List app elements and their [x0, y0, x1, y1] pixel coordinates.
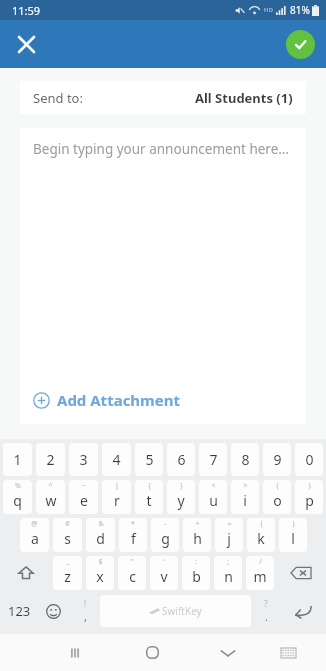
staticText: } [180, 481, 183, 491]
staticText: b [192, 567, 201, 586]
staticText: s [64, 529, 71, 548]
button[interactable]: % [3, 480, 32, 514]
button[interactable]: 4 [102, 443, 131, 476]
staticText: + [195, 519, 200, 529]
button[interactable]: 6 [167, 443, 195, 476]
button[interactable]: 1 [3, 443, 32, 476]
staticText: | [115, 481, 119, 491]
staticText: 7 [209, 450, 218, 469]
staticText: n [224, 567, 233, 586]
button[interactable]: 8 [231, 443, 259, 476]
button[interactable]: Shift [1, 555, 51, 591]
staticText: o [273, 491, 282, 510]
button[interactable]: Space [100, 595, 251, 627]
button[interactable]: 5 [135, 443, 163, 476]
button[interactable]: | [102, 480, 131, 514]
button[interactable]: { [135, 480, 163, 514]
staticText: " [131, 557, 134, 567]
button[interactable]: Add Attachment [20, 384, 306, 424]
button[interactable]: ) [295, 480, 323, 514]
staticText: ? [264, 598, 268, 609]
button[interactable]: 123 [2, 594, 37, 628]
button[interactable]: > [231, 480, 259, 514]
staticText: $ [98, 557, 103, 567]
staticText: j [227, 529, 231, 548]
staticText: ) [308, 481, 311, 491]
staticText: v [160, 567, 168, 586]
button[interactable]: Close [8, 26, 44, 62]
button[interactable]: 3 [69, 443, 98, 476]
staticText: r [114, 491, 120, 510]
staticText: i [243, 491, 247, 510]
button[interactable]: Emoji [37, 594, 70, 628]
button[interactable]: Send announcement [286, 30, 315, 59]
staticText: * [131, 519, 135, 529]
staticText: e [80, 491, 88, 510]
button[interactable]: Hide keyboard [268, 634, 308, 671]
staticText: u [209, 491, 218, 510]
staticText: @ [31, 519, 38, 529]
button[interactable]: ( [263, 480, 291, 514]
button[interactable]: 0 [295, 443, 323, 476]
staticText: 8 [241, 450, 250, 469]
staticText: x [96, 567, 104, 586]
button[interactable]: ; [214, 556, 242, 590]
staticText: y [177, 491, 185, 510]
button[interactable]: ( [247, 518, 275, 552]
staticText: All Students (1) [195, 89, 293, 107]
button[interactable]: : [182, 556, 210, 590]
staticText: m [253, 567, 267, 586]
button[interactable]: Back [208, 634, 248, 671]
staticText: l [291, 529, 295, 548]
button[interactable]: _ [53, 556, 82, 590]
staticText: g [161, 529, 170, 548]
button[interactable]: Begin typing your announcement here… [20, 128, 306, 384]
button[interactable]: < [199, 480, 227, 514]
button[interactable]: $ [86, 556, 114, 590]
button[interactable]: # [53, 518, 82, 552]
button[interactable]: } [167, 480, 195, 514]
staticText: _ [66, 557, 70, 567]
staticText: 9 [273, 450, 282, 469]
button[interactable]: ? [251, 594, 281, 628]
button[interactable]: ~ [69, 480, 98, 514]
button[interactable]: / [246, 556, 274, 590]
button[interactable]: * [119, 518, 147, 552]
button[interactable]: = [215, 518, 243, 552]
staticText: 3 [79, 450, 88, 469]
button[interactable]: ! [70, 594, 100, 628]
staticText: z [64, 567, 71, 586]
button[interactable]: @ [20, 518, 49, 552]
button[interactable]: 2 [36, 443, 65, 476]
staticText: 5 [145, 450, 154, 469]
staticText: 6 [177, 450, 186, 469]
button[interactable]: 7 [199, 443, 227, 476]
staticText: Begin typing your announcement here… [33, 140, 289, 158]
button[interactable]: ) [279, 518, 307, 552]
button[interactable]: & [86, 518, 115, 552]
staticText: p [305, 491, 314, 510]
staticText: ) [292, 519, 295, 529]
staticText: % [15, 481, 21, 491]
staticText: # [65, 519, 70, 529]
staticText: 81% [290, 3, 310, 17]
button[interactable]: Send to: [20, 81, 306, 114]
button[interactable]: + [183, 518, 211, 552]
staticText: & [98, 519, 104, 529]
staticText: ; [227, 557, 229, 567]
staticText: c [129, 567, 136, 586]
staticText: - [164, 519, 167, 529]
button[interactable]: - [151, 518, 179, 552]
button[interactable]: Backspace [276, 555, 325, 591]
button[interactable]: ‘ [150, 556, 178, 590]
staticText: 1 [13, 450, 22, 469]
button[interactable]: Home [132, 634, 172, 671]
button[interactable]: ^ [36, 480, 65, 514]
button[interactable]: " [118, 556, 146, 590]
button[interactable]: Enter [281, 594, 324, 628]
staticText: ! [84, 598, 87, 609]
button[interactable]: 9 [263, 443, 291, 476]
staticText: ~ [81, 481, 86, 491]
staticText: t [146, 491, 152, 510]
button[interactable]: Recents [54, 634, 95, 671]
